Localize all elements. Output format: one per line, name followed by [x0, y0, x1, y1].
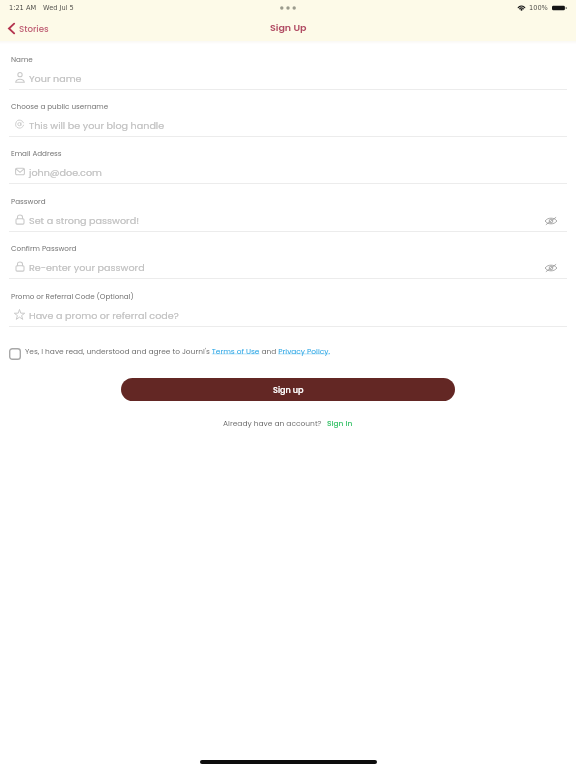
staticText: Password: [11, 196, 46, 206]
staticText: Wed Jul 5: [43, 4, 74, 12]
staticText: Email Address: [11, 148, 62, 158]
button[interactable]: Sign up: [121, 378, 455, 401]
staticText: Confirm Password: [11, 243, 77, 253]
staticText: john@doe.com: [29, 166, 102, 179]
staticText: 1:21 AM: [9, 4, 37, 12]
button[interactable]: Confirm Password: [0, 242, 576, 284]
button[interactable]: Stories: [6, 23, 53, 39]
button[interactable]: Choose a public username: [0, 100, 576, 142]
staticText: This will be your blog handle: [29, 119, 165, 132]
staticText: 100%: [529, 4, 548, 12]
button[interactable]: Promo or Referral Code (Optional): [0, 290, 576, 332]
staticText: Name: [11, 54, 33, 64]
button[interactable]: Show password: [543, 214, 559, 228]
staticText: Your name: [29, 72, 82, 85]
staticText: Sign Up: [270, 21, 307, 34]
staticText: Choose a public username: [11, 101, 109, 111]
staticText: Have a promo or referral code?: [29, 309, 179, 322]
staticText: Sign up: [273, 384, 304, 395]
staticText: Sign in: [327, 418, 353, 428]
staticText: Set a strong password!: [29, 214, 140, 227]
button[interactable]: Name: [0, 53, 576, 95]
staticText: Re-enter your password: [29, 261, 145, 274]
staticText: Already have an account?: [223, 418, 322, 428]
button[interactable]: Agree to terms: [9, 348, 21, 360]
staticText: Yes, I have read, understood and agree t…: [25, 346, 331, 356]
button[interactable]: Email Address: [0, 147, 576, 189]
button[interactable]: Show password: [543, 261, 559, 275]
staticText: Promo or Referral Code (Optional): [11, 291, 134, 301]
staticText: Stories: [19, 23, 49, 35]
button[interactable]: Sign in: [327, 418, 353, 428]
button[interactable]: Password: [0, 195, 576, 237]
